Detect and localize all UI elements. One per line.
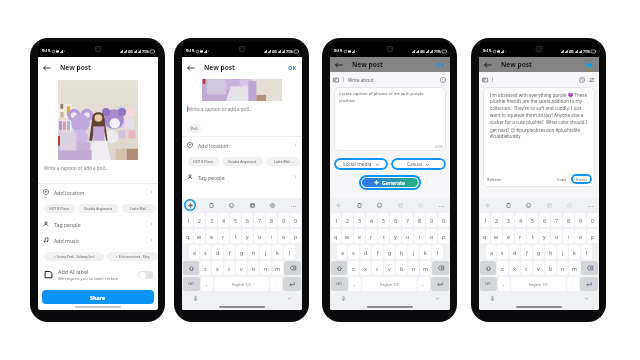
button[interactable]: o — [278, 229, 289, 243]
button[interactable]: !#1 — [480, 277, 497, 291]
button[interactable]: English 1/3 — [511, 277, 566, 291]
button[interactable]: a — [189, 245, 199, 259]
button[interactable]: Refresh — [487, 177, 501, 182]
button[interactable]: s — [497, 245, 508, 259]
button[interactable]: v — [384, 261, 395, 275]
button[interactable]: n — [260, 261, 271, 275]
button[interactable]: . — [270, 277, 282, 291]
button[interactable]: Keyboard tool — [225, 199, 237, 211]
button[interactable]: Keyboard tool — [563, 199, 575, 211]
button[interactable]: 7 — [254, 213, 265, 227]
button[interactable]: x — [509, 261, 520, 275]
button[interactable]: OK — [580, 58, 599, 72]
button[interactable]: 1 — [331, 213, 341, 227]
button[interactable]: 4 — [515, 213, 526, 227]
button[interactable]: t — [230, 229, 241, 243]
button[interactable]: y — [242, 229, 253, 243]
button[interactable]: 8 — [563, 213, 574, 227]
button[interactable]: g — [533, 245, 544, 259]
button[interactable]: z — [497, 261, 508, 275]
button[interactable]: w — [194, 229, 205, 243]
button[interactable]: Keyboard tool — [584, 199, 596, 211]
button[interactable]: . — [567, 277, 579, 291]
button[interactable]: q — [480, 229, 490, 243]
button[interactable]: u — [551, 229, 562, 243]
button[interactable]: w — [491, 229, 502, 243]
button[interactable]: k — [420, 245, 431, 259]
button[interactable]: Lotte Mal .. — [122, 204, 156, 213]
button[interactable]: l — [432, 245, 443, 259]
button[interactable]: n — [408, 261, 419, 275]
button[interactable]: o — [426, 229, 437, 243]
button[interactable]: Keyboard tool — [205, 199, 217, 211]
button[interactable]: h — [248, 245, 259, 259]
button[interactable]: y — [390, 229, 401, 243]
button[interactable]: , — [349, 277, 361, 291]
button[interactable]: Insert — [571, 174, 592, 184]
button[interactable]: n — [557, 261, 568, 275]
button[interactable]: Keyboard tool — [287, 199, 299, 211]
button[interactable]: d — [509, 245, 520, 259]
button[interactable]: z — [200, 261, 211, 275]
button[interactable]: 7 — [551, 213, 562, 227]
button[interactable]: d — [360, 245, 371, 259]
button[interactable]: m — [420, 261, 431, 275]
button[interactable]: Generate — [362, 178, 418, 187]
button[interactable]: g — [384, 245, 395, 259]
button[interactable]: 8 — [414, 213, 425, 227]
button[interactable]: 0 — [290, 213, 301, 227]
button[interactable]: t — [527, 229, 538, 243]
button[interactable]: 6 — [539, 213, 550, 227]
button[interactable]: Keyboard tool — [414, 199, 426, 211]
button[interactable]: h — [545, 245, 556, 259]
button[interactable]: p — [438, 229, 449, 243]
button[interactable]: Enter — [283, 277, 301, 291]
button[interactable]: f — [224, 245, 235, 259]
button[interactable]: j — [408, 245, 419, 259]
button[interactable]: 9 — [278, 213, 289, 227]
button[interactable]: Copy — [557, 177, 567, 182]
button[interactable]: 0 — [438, 213, 449, 227]
button[interactable]: Casual — [391, 158, 446, 170]
button[interactable]: 2 — [194, 213, 205, 227]
button[interactable]: Info — [439, 76, 447, 84]
button[interactable]: Keyboard tool — [332, 199, 344, 211]
button[interactable]: Tune — [588, 76, 596, 84]
button[interactable]: u — [254, 229, 265, 243]
button[interactable]: 0 — [587, 213, 598, 227]
button[interactable]: q — [183, 229, 193, 243]
button[interactable]: Keyboard tool — [543, 199, 555, 211]
button[interactable]: d — [212, 245, 223, 259]
button[interactable]: s — [348, 245, 359, 259]
button[interactable]: Keyboard tool — [184, 199, 196, 211]
button[interactable]: 5 — [230, 213, 241, 227]
button[interactable]: 4 — [218, 213, 229, 227]
button[interactable]: Enter — [580, 277, 598, 291]
button[interactable]: Add location — [38, 184, 158, 200]
button[interactable]: e — [503, 229, 514, 243]
button[interactable]: r — [366, 229, 377, 243]
button[interactable]: a — [337, 245, 347, 259]
button[interactable]: English 1/3 — [214, 277, 269, 291]
button[interactable]: Voice input — [339, 294, 347, 302]
button[interactable]: Keyboard tool — [522, 199, 534, 211]
button[interactable]: 2 — [491, 213, 502, 227]
button[interactable]: b — [396, 261, 407, 275]
button[interactable]: 9 — [575, 213, 586, 227]
button[interactable]: !#1 — [331, 277, 348, 291]
button[interactable]: w — [342, 229, 353, 243]
button[interactable]: v — [533, 261, 544, 275]
button[interactable]: x — [212, 261, 223, 275]
button[interactable]: Keyboard tool — [435, 199, 447, 211]
button[interactable]: z — [348, 261, 359, 275]
button[interactable]: e — [354, 229, 365, 243]
button[interactable]: v — [236, 261, 247, 275]
button[interactable]: Back — [184, 61, 197, 74]
button[interactable]: Backspace — [581, 261, 598, 275]
button[interactable]: Add location — [182, 137, 302, 153]
button[interactable]: Share — [42, 290, 154, 304]
button[interactable]: Keyboard tool — [394, 199, 406, 211]
button[interactable]: e — [206, 229, 217, 243]
button[interactable]: Backspace — [284, 261, 301, 275]
button[interactable]: b — [545, 261, 556, 275]
